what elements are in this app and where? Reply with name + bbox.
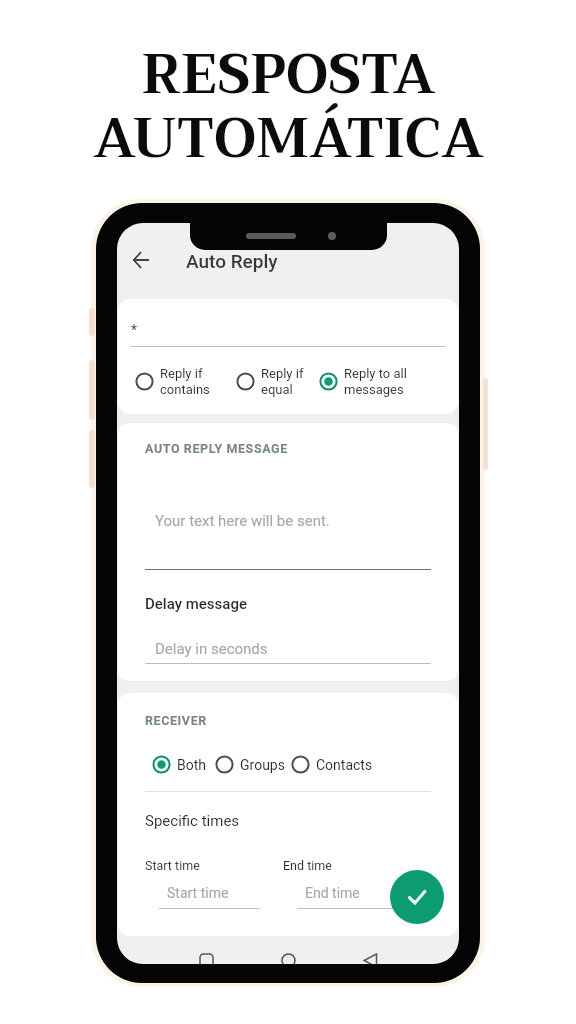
staticText: Contacts	[316, 757, 373, 773]
staticText: Delay message	[145, 595, 248, 613]
button[interactable]: Reply to all messages	[319, 366, 407, 397]
staticText: AUTOMÁTICA	[93, 91, 484, 186]
button[interactable]: Reply if equal	[236, 366, 304, 397]
staticText: RESPOSTA	[141, 27, 436, 122]
staticText: End time	[283, 858, 332, 873]
button[interactable]: Save	[390, 870, 444, 924]
button[interactable]: Back	[124, 243, 158, 277]
staticText: Reply if equal	[261, 366, 304, 397]
staticText: Specific times	[145, 812, 240, 830]
staticText: Reply to all messages	[344, 366, 407, 397]
staticText: Auto Reply	[186, 250, 278, 272]
staticText: *	[131, 322, 138, 338]
button[interactable]: Groups	[215, 755, 285, 774]
staticText: AUTO REPLY MESSAGE	[145, 441, 288, 456]
staticText: Start time	[145, 858, 200, 873]
staticText: End time	[305, 885, 360, 901]
staticText: Start time	[167, 885, 229, 901]
staticText: RECEIVER	[145, 713, 207, 728]
staticText: Your text here will be sent.	[155, 512, 330, 530]
staticText: Delay in seconds	[155, 640, 268, 658]
button[interactable]: Both	[152, 755, 206, 774]
staticText: Groups	[240, 757, 285, 773]
staticText: Reply if contains	[160, 366, 210, 397]
staticText: Both	[177, 757, 206, 773]
button[interactable]: Reply if contains	[135, 366, 210, 397]
button[interactable]: Contacts	[291, 755, 373, 774]
